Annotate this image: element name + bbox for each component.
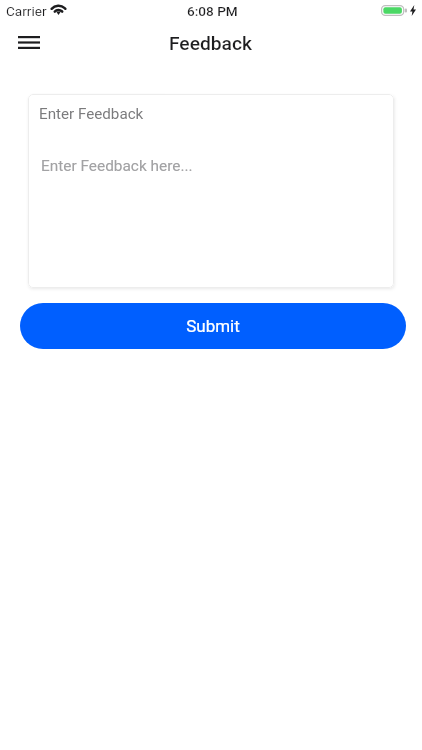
staticText: Submit <box>186 316 240 336</box>
staticText: 6:08 PM <box>187 3 238 19</box>
button[interactable]: Submit <box>20 303 406 349</box>
staticText: Carrier <box>6 3 47 19</box>
button[interactable]: Open navigation menu <box>9 22 49 62</box>
button[interactable]: Enter Feedback <box>28 94 394 288</box>
staticText: Enter Feedback here... <box>41 157 193 175</box>
staticText: Feedback <box>169 32 253 55</box>
staticText: Enter Feedback <box>39 105 144 123</box>
